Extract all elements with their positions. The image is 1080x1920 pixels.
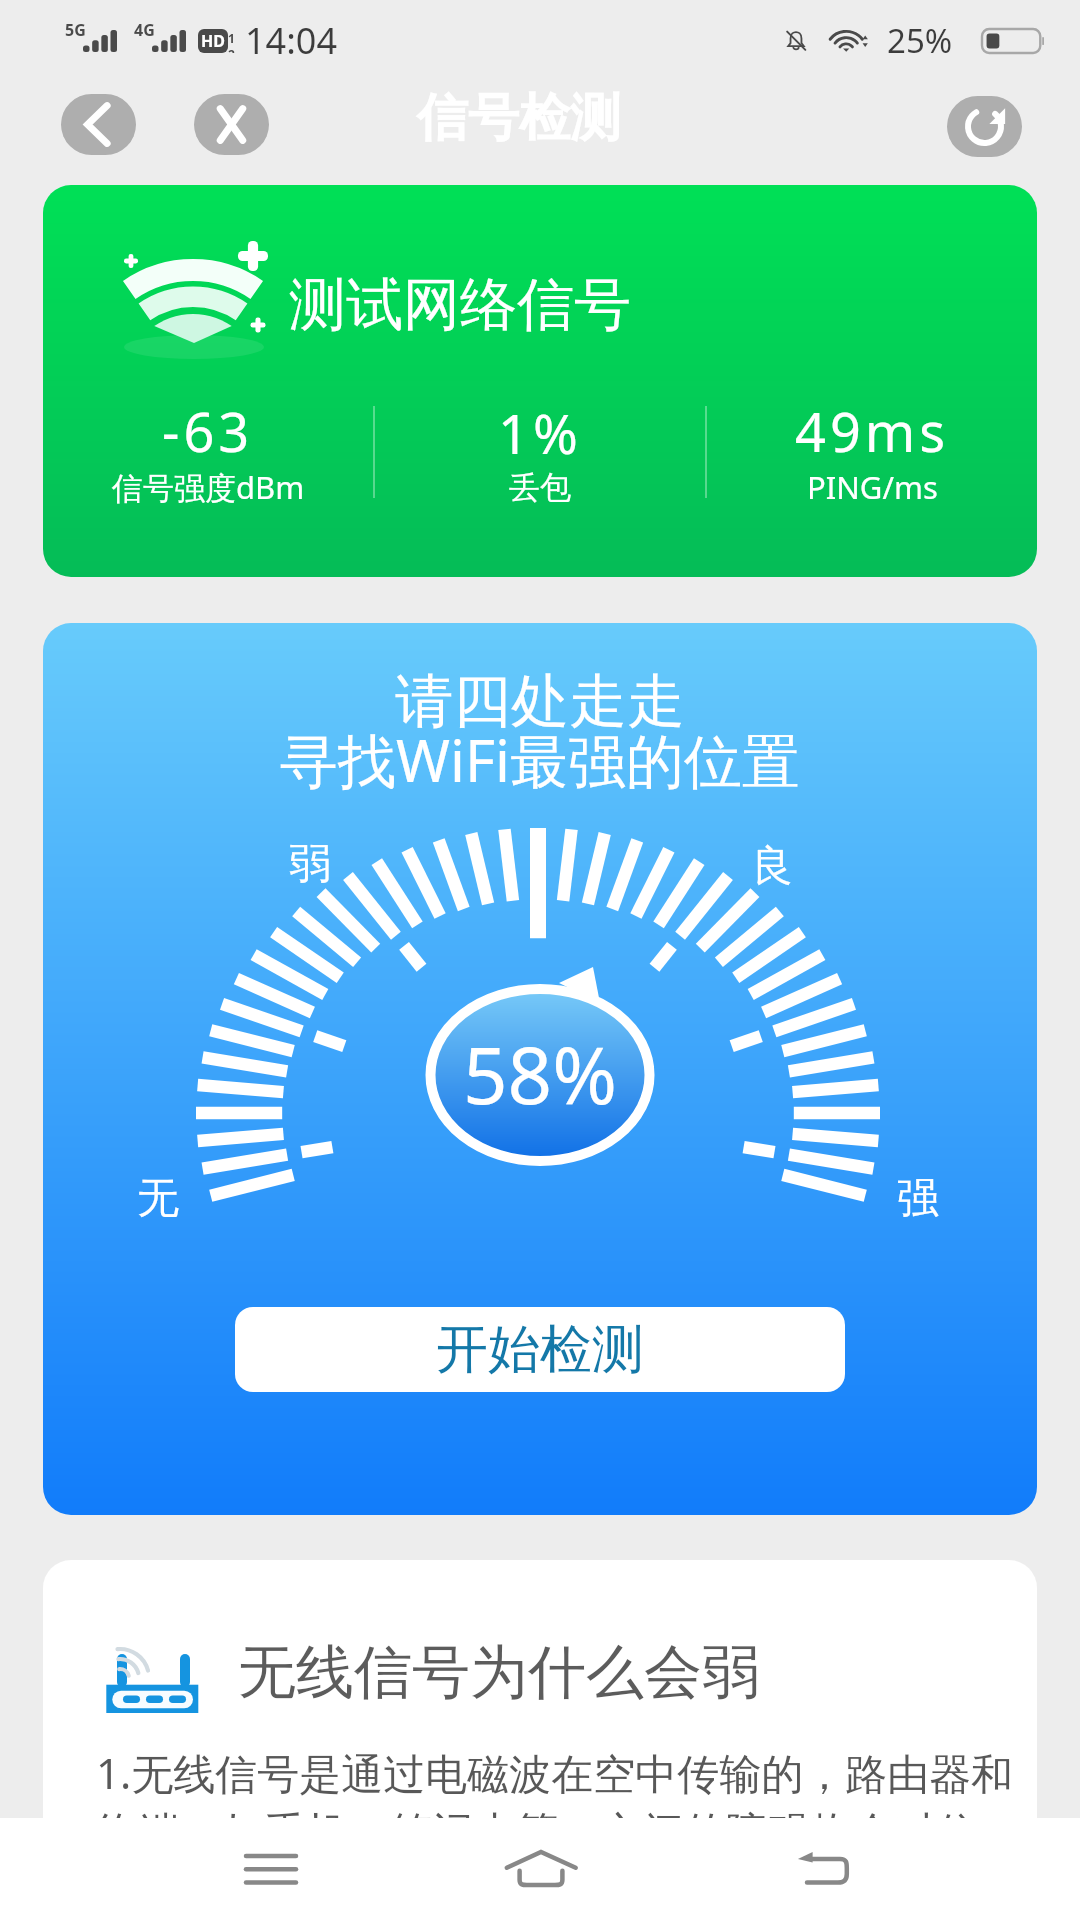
staticText: HD (201, 30, 225, 52)
staticText: 无 (137, 1172, 179, 1225)
staticText: 14:04 (245, 16, 338, 65)
staticText: 2 (228, 46, 235, 53)
staticText: 测试网络信号 (289, 269, 631, 341)
staticText: 请四处走走 (43, 665, 1037, 738)
staticText: 丢包 (509, 468, 571, 507)
staticText: 58% (43, 1021, 1037, 1127)
staticText: 无线信号为什么会弱 (238, 1636, 760, 1709)
staticText: 寻找WiFi最强的位置 (43, 720, 1037, 799)
button[interactable]: Recents (231, 1844, 311, 1894)
staticText: 信号检测 (417, 86, 621, 150)
button[interactable]: 开始检测 (235, 1307, 845, 1392)
staticText: -63 (162, 394, 254, 468)
staticText: 4G (134, 19, 155, 41)
staticText: 25% (887, 18, 953, 63)
staticText: 1% (498, 396, 582, 470)
button[interactable]: Back (780, 1844, 870, 1894)
staticText: 开始检测 (436, 1317, 644, 1383)
staticText: 49ms (795, 394, 950, 468)
staticText: 良 (751, 840, 793, 893)
staticText: 弱 (289, 838, 331, 891)
staticText: PING/ms (807, 466, 938, 508)
staticText: 信号强度dBm (112, 466, 305, 508)
staticText: 1 (228, 30, 235, 46)
button[interactable]: Home (501, 1844, 581, 1894)
staticText: 1.无线信号是通过电磁波在空中传输的，路由器和终端（如手机、笔记本等）之间的障碍… (96, 1744, 1036, 1860)
button[interactable]: Back (61, 94, 136, 155)
button[interactable]: Refresh (947, 96, 1022, 157)
button[interactable]: 测试网络信号 (43, 185, 1037, 577)
button[interactable]: Close (194, 94, 269, 155)
staticText: 5G (65, 19, 86, 41)
staticText: 强 (897, 1172, 939, 1225)
